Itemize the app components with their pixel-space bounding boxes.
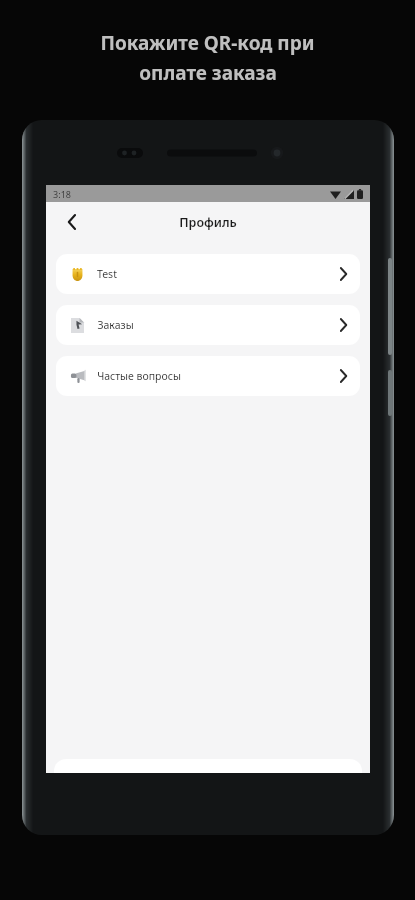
- staticText: Частые вопросы: [97, 369, 181, 383]
- staticText: 3:18: [53, 188, 71, 200]
- staticText: Заказы: [97, 318, 134, 332]
- button[interactable]: Частые вопросы: [56, 356, 360, 396]
- staticText: Test: [97, 267, 117, 281]
- button[interactable]: Test: [56, 254, 360, 294]
- staticText: оплате заказа: [139, 60, 277, 86]
- button[interactable]: Заказы: [56, 305, 360, 345]
- staticText: Профиль: [179, 214, 237, 231]
- button[interactable]: Back: [55, 205, 89, 239]
- staticText: Покажите QR-код при: [100, 30, 315, 56]
